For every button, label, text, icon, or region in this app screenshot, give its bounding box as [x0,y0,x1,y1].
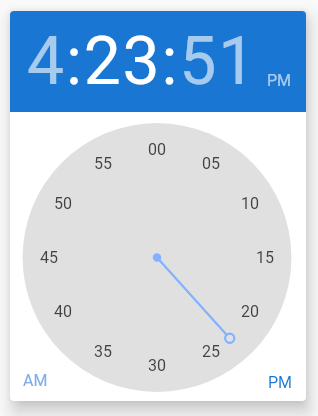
staticText: 00 [148,140,166,159]
staticText: 20 [241,302,259,321]
staticText: 05 [202,154,220,173]
staticText: 35 [94,342,112,361]
staticText: 4:23:51 [27,23,258,100]
staticText: PM [267,71,292,90]
staticText: AM [23,371,48,390]
staticText: 30 [148,356,166,375]
staticText: 10 [241,194,259,213]
staticText: 15 [256,248,274,267]
staticText: 45 [40,248,58,267]
staticText: PM [268,373,293,392]
staticText: 25 [202,342,220,361]
staticText: 55 [94,154,112,173]
staticText: 50 [54,194,72,213]
staticText: 40 [54,302,72,321]
